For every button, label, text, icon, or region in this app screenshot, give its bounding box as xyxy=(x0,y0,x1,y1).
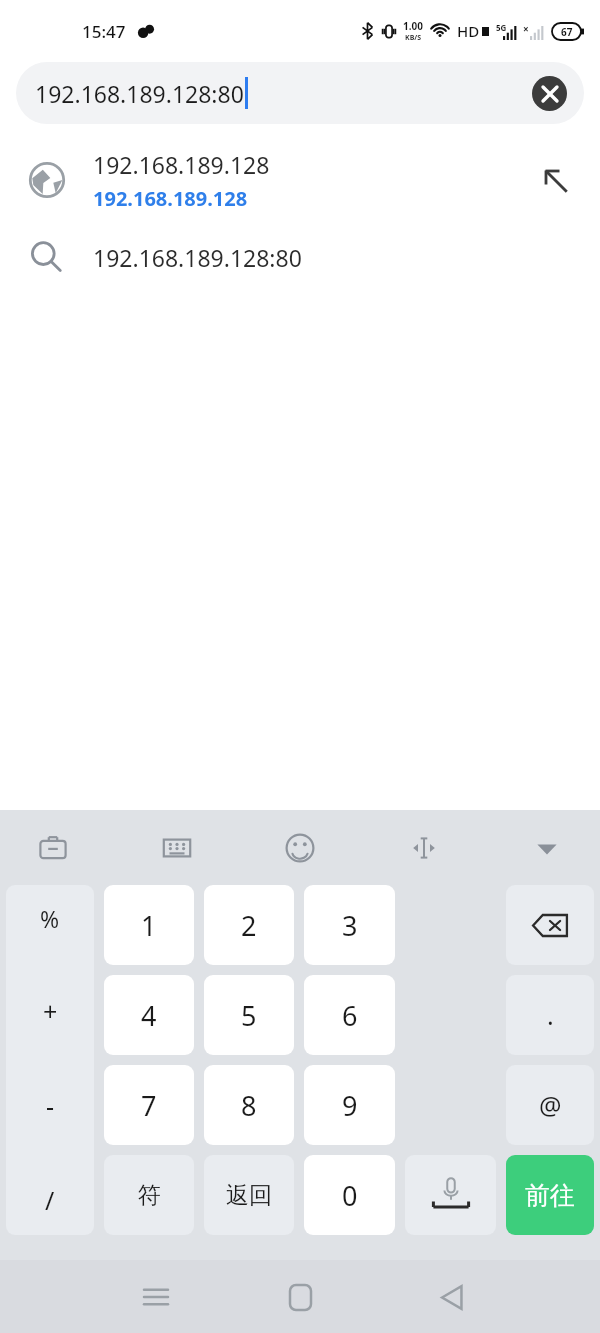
button[interactable]: 前往 xyxy=(506,1155,594,1235)
staticText: × xyxy=(523,22,529,36)
staticText: 4 xyxy=(141,997,157,1034)
staticText: % xyxy=(40,903,60,934)
button[interactable]: 192.168.189.128:80 xyxy=(0,220,600,294)
staticText: 3 xyxy=(342,907,358,944)
staticText: 返回 xyxy=(226,1181,272,1210)
button[interactable]: 0 xyxy=(304,1155,395,1235)
staticText: 192.168.189.128 xyxy=(93,185,248,212)
button[interactable]: Clipboard xyxy=(30,825,76,871)
staticText: 1 xyxy=(141,907,157,944)
button[interactable]: 5 xyxy=(204,975,294,1055)
staticText: 192.168.189.128:80 xyxy=(35,78,244,109)
button[interactable]: Hide keyboard xyxy=(524,825,570,871)
staticText: 192.168.189.128 xyxy=(93,149,270,180)
button[interactable]: Recent apps xyxy=(133,1274,179,1320)
staticText: / xyxy=(45,1183,55,1217)
staticText: 5G xyxy=(496,22,507,33)
button[interactable]: 9 xyxy=(304,1065,395,1145)
staticText: 0 xyxy=(342,1177,358,1214)
button[interactable]: 7 xyxy=(104,1065,194,1145)
button[interactable]: Backspace xyxy=(506,885,594,965)
staticText: 6 xyxy=(342,997,358,1034)
staticText: . xyxy=(547,998,554,1032)
button[interactable]: Use suggestion xyxy=(536,161,574,199)
button[interactable]: Home xyxy=(277,1274,323,1320)
button[interactable]: Keyboard layout xyxy=(154,825,200,871)
button[interactable]: Space, voice input xyxy=(405,1155,496,1235)
staticText: KB/S xyxy=(405,33,422,43)
staticText: 5 xyxy=(241,997,257,1034)
staticText: 9 xyxy=(342,1087,358,1124)
button[interactable]: Move cursor xyxy=(401,825,447,871)
staticText: 15:47 xyxy=(82,20,126,43)
button[interactable]: 返回 xyxy=(204,1155,294,1235)
button[interactable]: 2 xyxy=(204,885,294,965)
staticText: 2 xyxy=(241,907,257,944)
staticText: + xyxy=(43,994,58,1028)
staticText: 前往 xyxy=(525,1180,575,1211)
staticText: 1.00 xyxy=(403,19,423,33)
staticText: 8 xyxy=(241,1087,257,1124)
button[interactable]: 3 xyxy=(304,885,395,965)
button[interactable]: 6 xyxy=(304,975,395,1055)
button[interactable]: 8 xyxy=(204,1065,294,1145)
button[interactable]: @ xyxy=(506,1065,594,1145)
button[interactable]: 1 xyxy=(104,885,194,965)
button[interactable]: Back xyxy=(429,1274,475,1320)
button[interactable]: Emoji xyxy=(277,825,323,871)
staticText: HD xyxy=(457,21,480,41)
button[interactable]: 192.168.189.128:80 xyxy=(16,62,584,124)
staticText: @ xyxy=(539,1088,562,1122)
staticText: 符 xyxy=(138,1181,161,1210)
staticText: 67 xyxy=(561,25,573,39)
staticText: 192.168.189.128:80 xyxy=(93,242,302,273)
button[interactable]: 符 xyxy=(104,1155,194,1235)
staticText: - xyxy=(46,1089,55,1123)
button[interactable]: Clear text xyxy=(532,76,567,111)
button[interactable]: . xyxy=(506,975,594,1055)
staticText: 7 xyxy=(141,1087,157,1124)
button[interactable]: 4 xyxy=(104,975,194,1055)
button[interactable]: 192.168.189.128 xyxy=(0,140,600,220)
button[interactable]: Symbols xyxy=(6,885,94,1235)
